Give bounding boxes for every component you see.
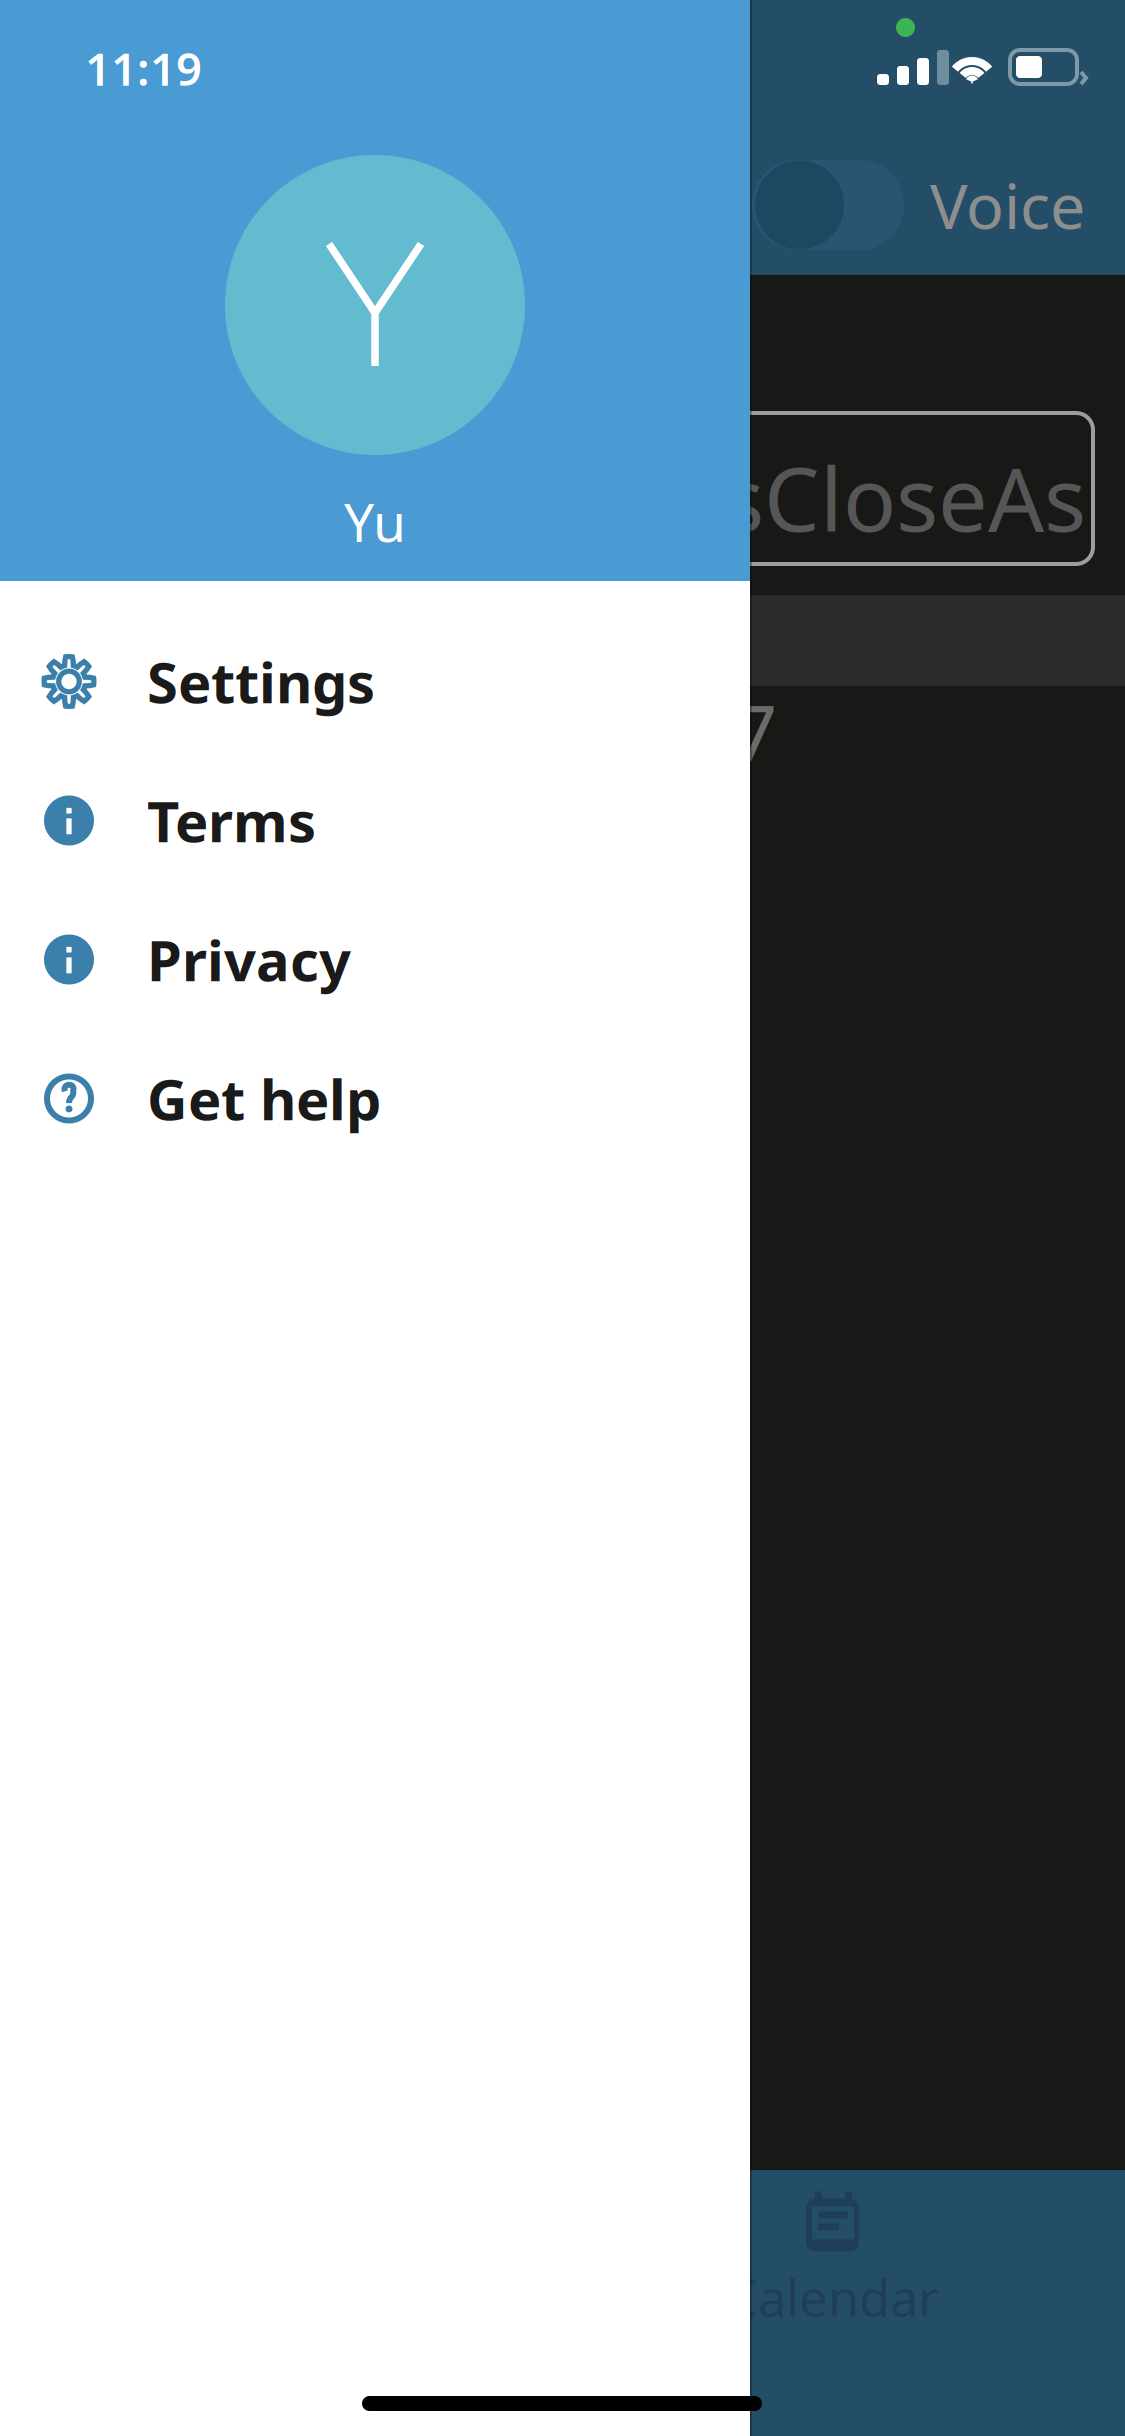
button[interactable]: Calendar xyxy=(692,2181,973,2341)
staticText: esCloseAs xyxy=(672,439,1086,556)
staticText: Get help xyxy=(147,1061,381,1136)
button[interactable]: Voice toggle xyxy=(752,160,904,250)
button[interactable]: Settings xyxy=(0,612,750,751)
staticText: 7 xyxy=(733,680,777,783)
button[interactable]: Terms xyxy=(0,751,750,890)
staticText: Terms xyxy=(147,783,316,858)
button[interactable]: Privacy xyxy=(0,890,750,1029)
staticText: Settings xyxy=(147,644,375,719)
staticText: Privacy xyxy=(147,922,351,997)
staticText: Yu xyxy=(344,486,406,557)
button[interactable]: Get help xyxy=(0,1029,750,1168)
staticText: 11:19 xyxy=(85,38,202,98)
staticText: Voice xyxy=(930,163,1085,246)
staticText: Calendar xyxy=(726,2263,939,2331)
